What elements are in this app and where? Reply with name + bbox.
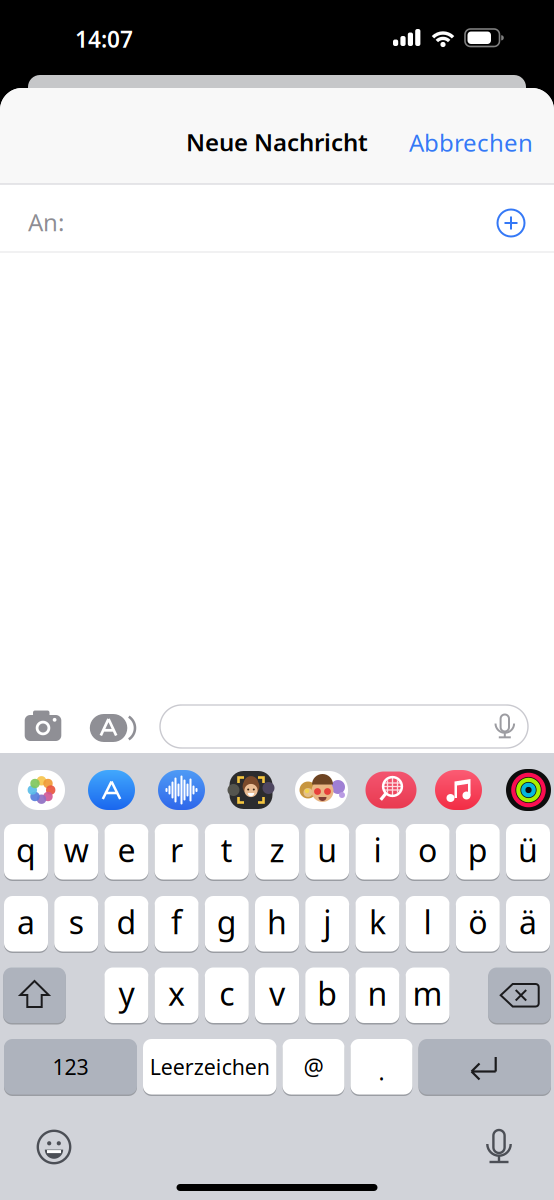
staticText: g — [217, 900, 237, 943]
button[interactable]: Zeilenschalter — [418, 1039, 551, 1094]
button[interactable]: Memoji — [229, 771, 272, 809]
button[interactable]: Emoji — [32, 1125, 76, 1169]
button[interactable]: Fotos — [18, 770, 65, 810]
button[interactable]: y — [104, 967, 148, 1023]
staticText: n — [367, 972, 387, 1014]
button[interactable]: k — [355, 896, 399, 951]
button[interactable]: z — [255, 824, 299, 879]
button[interactable]: c — [205, 967, 249, 1023]
button[interactable]: i — [355, 824, 399, 879]
button[interactable]: s — [54, 896, 98, 951]
staticText: p — [468, 828, 488, 871]
staticText: ä — [519, 900, 537, 943]
button[interactable]: Umschalttaste — [3, 967, 66, 1023]
staticText: ö — [468, 900, 487, 943]
button[interactable]: p — [456, 824, 500, 879]
staticText: i — [373, 828, 381, 871]
staticText: j — [323, 900, 331, 943]
button[interactable]: g — [205, 896, 249, 951]
button[interactable]: q — [4, 824, 48, 879]
button[interactable]: u — [305, 824, 349, 879]
staticText: . — [378, 1057, 384, 1087]
staticText: o — [418, 828, 437, 871]
button[interactable]: Musik — [435, 770, 482, 810]
button[interactable]: Animoji-Sticker — [295, 771, 348, 809]
button[interactable]: v — [255, 967, 299, 1023]
staticText: y — [118, 972, 134, 1014]
button[interactable]: ä — [506, 896, 550, 951]
button[interactable]: 123 — [4, 1039, 137, 1094]
button[interactable]: Empfänger hinzufügen — [494, 206, 528, 240]
button[interactable]: n — [355, 967, 399, 1023]
button[interactable]: iMessage-Apps — [86, 711, 138, 745]
button[interactable]: e — [104, 824, 148, 879]
staticText: t — [221, 828, 233, 871]
button[interactable]: . — [350, 1039, 412, 1094]
staticText: Neue Nachricht — [186, 126, 368, 158]
button[interactable]: j — [305, 896, 349, 951]
staticText: r — [170, 828, 183, 871]
staticText: c — [219, 972, 234, 1014]
button[interactable]: x — [155, 967, 199, 1023]
staticText: x — [168, 972, 185, 1014]
button[interactable]: Leerzeichen — [143, 1039, 276, 1094]
button[interactable]: Bilder — [365, 771, 416, 808]
button[interactable]: Löschen — [488, 967, 551, 1023]
staticText: v — [269, 972, 285, 1014]
staticText: e — [117, 828, 135, 871]
staticText: q — [16, 828, 36, 871]
staticText: h — [267, 900, 287, 943]
button[interactable]: Diktierfunktion — [477, 1126, 521, 1170]
staticText: 123 — [52, 1053, 88, 1081]
button[interactable]: m — [406, 967, 450, 1023]
staticText: s — [69, 900, 84, 943]
button[interactable]: a — [4, 896, 48, 951]
staticText: f — [171, 900, 182, 943]
staticText: ü — [518, 828, 538, 871]
button[interactable]: b — [305, 967, 349, 1023]
button[interactable]: w — [54, 824, 98, 879]
button[interactable]: d — [104, 896, 148, 951]
button[interactable]: ü — [506, 824, 550, 879]
staticText: z — [269, 828, 284, 871]
staticText: An: — [28, 206, 64, 238]
button[interactable]: Aktivität — [506, 769, 551, 811]
staticText: u — [317, 828, 337, 871]
staticText: a — [17, 900, 35, 943]
button[interactable]: Abbrechen — [409, 127, 533, 158]
button[interactable]: t — [205, 824, 249, 879]
button[interactable]: o — [406, 824, 450, 879]
staticText: d — [116, 900, 136, 943]
staticText: Leerzeichen — [150, 1053, 270, 1081]
staticText: @ — [303, 1052, 323, 1082]
button[interactable]: @ — [282, 1039, 344, 1094]
button[interactable]: ö — [456, 896, 500, 951]
button[interactable]: f — [155, 896, 199, 951]
button[interactable]: Musik-Memos — [158, 770, 205, 810]
staticText: 14:07 — [75, 24, 133, 54]
button[interactable]: l — [406, 896, 450, 951]
button[interactable]: App Store — [88, 770, 135, 810]
button[interactable]: r — [155, 824, 199, 879]
button[interactable]: Nachricht — [160, 705, 528, 748]
button[interactable]: h — [255, 896, 299, 951]
staticText: k — [369, 900, 386, 943]
staticText: m — [413, 972, 443, 1014]
staticText: b — [317, 972, 337, 1014]
staticText: l — [424, 900, 432, 943]
staticText: Abbrechen — [409, 127, 533, 158]
button[interactable]: Kamera — [21, 708, 65, 746]
staticText: w — [64, 828, 89, 871]
